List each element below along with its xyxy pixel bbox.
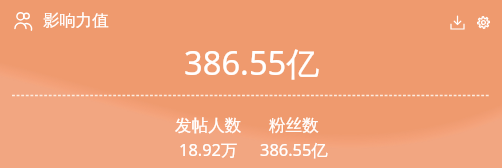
staticText: 386.55亿: [184, 40, 319, 85]
staticText: 粉丝数: [269, 115, 319, 136]
button[interactable]: Settings: [472, 11, 494, 33]
staticText: 影响力值: [43, 10, 109, 31]
staticText: 18.92万: [179, 138, 238, 160]
button[interactable]: 粉丝数: [260, 115, 328, 160]
button[interactable]: 影响力值: [14, 10, 109, 31]
staticText: 发帖人数: [175, 115, 242, 136]
button[interactable]: Download: [446, 11, 468, 33]
button[interactable]: 发帖人数: [175, 115, 242, 160]
staticText: 386.55亿: [260, 138, 328, 160]
